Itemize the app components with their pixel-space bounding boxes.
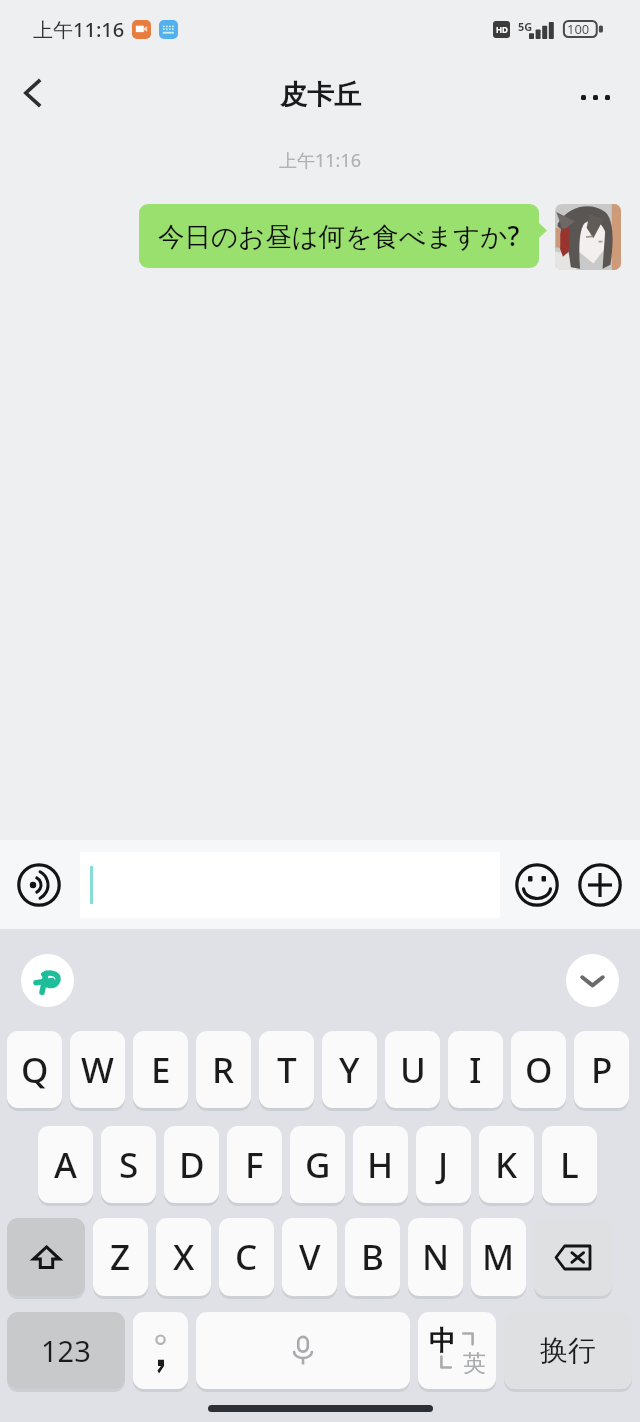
staticText: G xyxy=(305,1141,331,1189)
button[interactable]: Space / voice input xyxy=(196,1312,410,1389)
button[interactable]: E xyxy=(133,1031,188,1108)
button[interactable]: S xyxy=(101,1126,156,1203)
button[interactable]: X xyxy=(156,1218,211,1296)
button[interactable]: Hide keyboard xyxy=(566,954,619,1007)
button[interactable]: T xyxy=(259,1031,314,1108)
staticText: H xyxy=(367,1141,394,1189)
staticText: Y xyxy=(339,1046,360,1094)
staticText: 上午11:16 xyxy=(0,148,640,173)
button[interactable]: 123 xyxy=(7,1312,125,1389)
staticText: A xyxy=(54,1141,77,1189)
staticText: K xyxy=(495,1141,518,1189)
staticText: 换行 xyxy=(540,1333,596,1368)
staticText: S xyxy=(119,1141,139,1189)
button[interactable]: L xyxy=(542,1126,597,1203)
button[interactable]: R xyxy=(196,1031,251,1108)
staticText: 中 xyxy=(429,1324,456,1358)
staticText: W xyxy=(81,1046,114,1094)
button[interactable]: Q xyxy=(7,1031,62,1108)
staticText: 上午11:16 xyxy=(33,16,125,43)
staticText: 今日のお昼は何を食べますか? xyxy=(158,218,520,254)
button[interactable]: Comma xyxy=(133,1312,188,1389)
staticText: C xyxy=(235,1233,258,1281)
button[interactable] xyxy=(555,204,621,270)
button[interactable]: D xyxy=(164,1126,219,1203)
button[interactable]: G xyxy=(290,1126,345,1203)
staticText: T xyxy=(277,1046,297,1094)
button[interactable]: C xyxy=(219,1218,274,1296)
staticText: I xyxy=(469,1046,482,1094)
staticText: F xyxy=(245,1141,264,1189)
staticText: 5G xyxy=(518,19,533,34)
staticText: O xyxy=(525,1046,553,1094)
button[interactable]: Backspace xyxy=(534,1218,612,1296)
staticText: P xyxy=(591,1046,613,1094)
button[interactable]: More functions xyxy=(577,862,623,908)
button[interactable]: W xyxy=(70,1031,125,1108)
button[interactable]: N xyxy=(408,1218,463,1296)
staticText: 123 xyxy=(41,1331,91,1370)
button[interactable]: More options xyxy=(570,58,640,136)
button[interactable]: Emoji xyxy=(514,862,560,908)
button[interactable]: Switch Chinese English xyxy=(418,1312,496,1389)
staticText: R xyxy=(212,1046,235,1094)
staticText: E xyxy=(151,1046,171,1094)
button[interactable]: O xyxy=(511,1031,566,1108)
button[interactable]: Y xyxy=(322,1031,377,1108)
staticText: Q xyxy=(21,1046,49,1094)
staticText: HD xyxy=(496,24,508,35)
button[interactable]: Voice input xyxy=(16,862,62,908)
staticText: U xyxy=(400,1046,426,1094)
staticText: N xyxy=(422,1233,450,1281)
button[interactable]: J xyxy=(416,1126,471,1203)
button[interactable] xyxy=(80,852,500,918)
staticText: Z xyxy=(110,1233,131,1281)
button[interactable]: B xyxy=(345,1218,400,1296)
button[interactable]: U xyxy=(385,1031,440,1108)
staticText: L xyxy=(560,1141,579,1189)
button[interactable]: Input method settings xyxy=(21,954,74,1007)
button[interactable]: K xyxy=(479,1126,534,1203)
staticText: 皮卡丘 xyxy=(280,78,361,112)
button[interactable]: M xyxy=(471,1218,526,1296)
button[interactable]: 换行 xyxy=(504,1312,632,1389)
button[interactable]: Shift xyxy=(7,1218,85,1296)
staticText: M xyxy=(482,1233,515,1281)
staticText: B xyxy=(361,1233,384,1281)
staticText: J xyxy=(438,1141,449,1189)
staticText: D xyxy=(179,1141,205,1189)
button[interactable]: V xyxy=(282,1218,337,1296)
button[interactable]: Back xyxy=(0,58,62,136)
staticText: X xyxy=(173,1233,195,1281)
staticText: 英 xyxy=(463,1349,486,1378)
button[interactable]: A xyxy=(38,1126,93,1203)
button[interactable]: F xyxy=(227,1126,282,1203)
button[interactable]: Z xyxy=(93,1218,148,1296)
button[interactable]: I xyxy=(448,1031,503,1108)
button[interactable]: 今日のお昼は何を食べますか? xyxy=(139,204,539,268)
staticText: V xyxy=(299,1233,321,1281)
button[interactable]: P xyxy=(574,1031,629,1108)
staticText: 100 xyxy=(567,20,590,38)
button[interactable]: H xyxy=(353,1126,408,1203)
